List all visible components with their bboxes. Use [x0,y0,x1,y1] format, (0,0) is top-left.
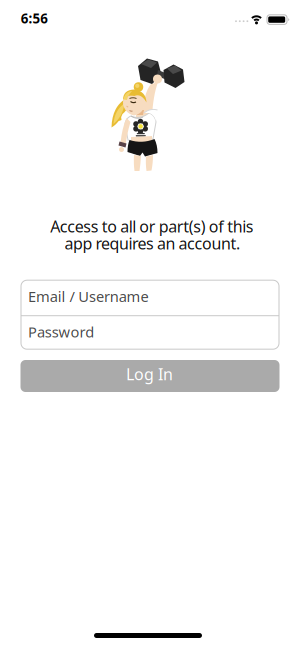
staticText: Log In [126,363,173,385]
staticText: Password [28,322,94,341]
button[interactable]: Password [21,316,279,349]
staticText: app requires an account. [65,233,240,254]
button[interactable]: Email / Username [21,280,279,315]
staticText: Access to all or part(s) of this [50,216,254,237]
staticText: Email / Username [28,286,148,306]
button[interactable]: Log In [20,360,279,392]
staticText: 6:56 [21,9,48,27]
